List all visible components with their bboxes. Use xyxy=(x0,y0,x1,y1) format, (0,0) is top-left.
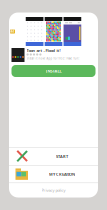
staticText: START xyxy=(56,154,68,159)
button[interactable]: INSTALL xyxy=(11,65,95,77)
staticText: Ad xyxy=(10,30,14,33)
button[interactable]: MY CREATION xyxy=(9,166,98,182)
button[interactable]: START xyxy=(9,148,98,165)
staticText: MY CREATION xyxy=(49,171,75,177)
staticText: Privacy policy xyxy=(41,188,65,193)
staticText: Toon art - Flood it! xyxy=(26,48,60,53)
button[interactable]: Privacy policy xyxy=(9,183,98,197)
staticText: Install it now! App for free! Have fun! xyxy=(26,57,79,60)
staticText: INSTALL xyxy=(45,68,61,74)
